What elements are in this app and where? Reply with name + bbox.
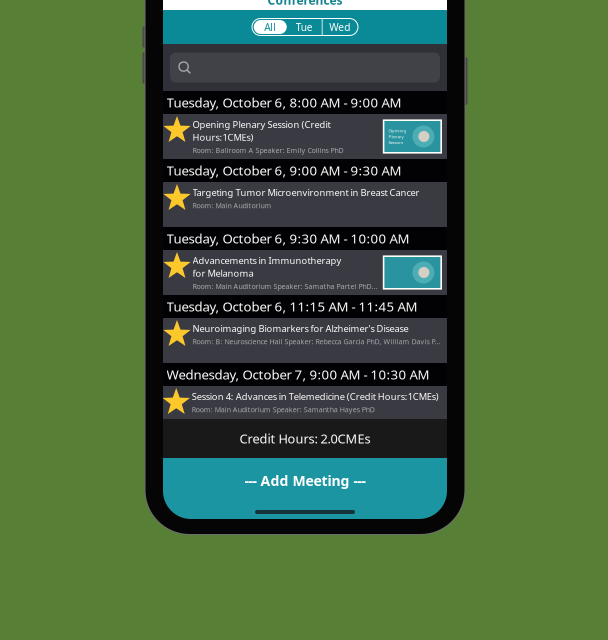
staticText: Room: B: Neuroscience Hall Speaker: Rebe… <box>192 337 440 346</box>
button[interactable]: Wed <box>322 19 358 35</box>
button[interactable]: Advancements in Immunotherapy for Melano… <box>163 250 447 295</box>
staticText: Plenary Session <box>388 134 403 145</box>
staticText: Wed <box>329 20 350 34</box>
staticText: Tuesday, October 6, 11:15 AM - 11:45 AM <box>166 297 417 315</box>
staticText: Session 4: Advances in Telemedicine (Cre… <box>192 390 439 403</box>
staticText: Credit Hours: 2.0CMEs <box>239 430 370 447</box>
staticText: Opening <box>388 128 406 134</box>
staticText: Room: Main Auditorium Speaker: Samantha … <box>192 405 375 414</box>
staticText: Room: Ballroom A Speaker: Emily Collins … <box>192 145 343 155</box>
button[interactable]: --- Add Meeting --- <box>163 458 447 519</box>
button[interactable]: Opening Plenary Session (Credit Hours:1C… <box>163 114 447 159</box>
staticText: Tuesday, October 6, 8:00 AM - 9:00 AM <box>166 93 401 111</box>
button[interactable]: Tue <box>287 19 322 35</box>
button[interactable]: Neuroimaging Biomarkers for Alzheimer's … <box>163 318 447 363</box>
staticText: --- Add Meeting --- <box>244 471 365 490</box>
staticText: Room: Main Auditorium <box>192 201 271 210</box>
staticText: Tuesday, October 6, 9:00 AM - 9:30 AM <box>166 161 401 179</box>
button[interactable]: Session 4: Advances in Telemedicine (Cre… <box>163 386 447 419</box>
staticText: All <box>264 20 276 34</box>
staticText: Room: Main Auditorium Speaker: Samatha P… <box>192 281 377 291</box>
staticText: Targeting Tumor Microenvironment in Brea… <box>192 186 419 199</box>
button[interactable]: All <box>252 20 287 34</box>
staticText: Tuesday, October 6, 9:30 AM - 10:00 AM <box>166 229 409 247</box>
staticText: Conferences <box>267 0 342 8</box>
staticText: Wednesday, October 7, 9:00 AM - 10:30 AM <box>166 365 429 383</box>
staticText: Advancements in Immunotherapy for Melano… <box>192 254 341 279</box>
staticText: Tue <box>296 20 313 34</box>
button[interactable]: Targeting Tumor Microenvironment in Brea… <box>163 182 447 227</box>
staticText: Neuroimaging Biomarkers for Alzheimer's … <box>192 322 408 335</box>
staticText: Opening Plenary Session (Credit Hours:1C… <box>192 118 330 143</box>
